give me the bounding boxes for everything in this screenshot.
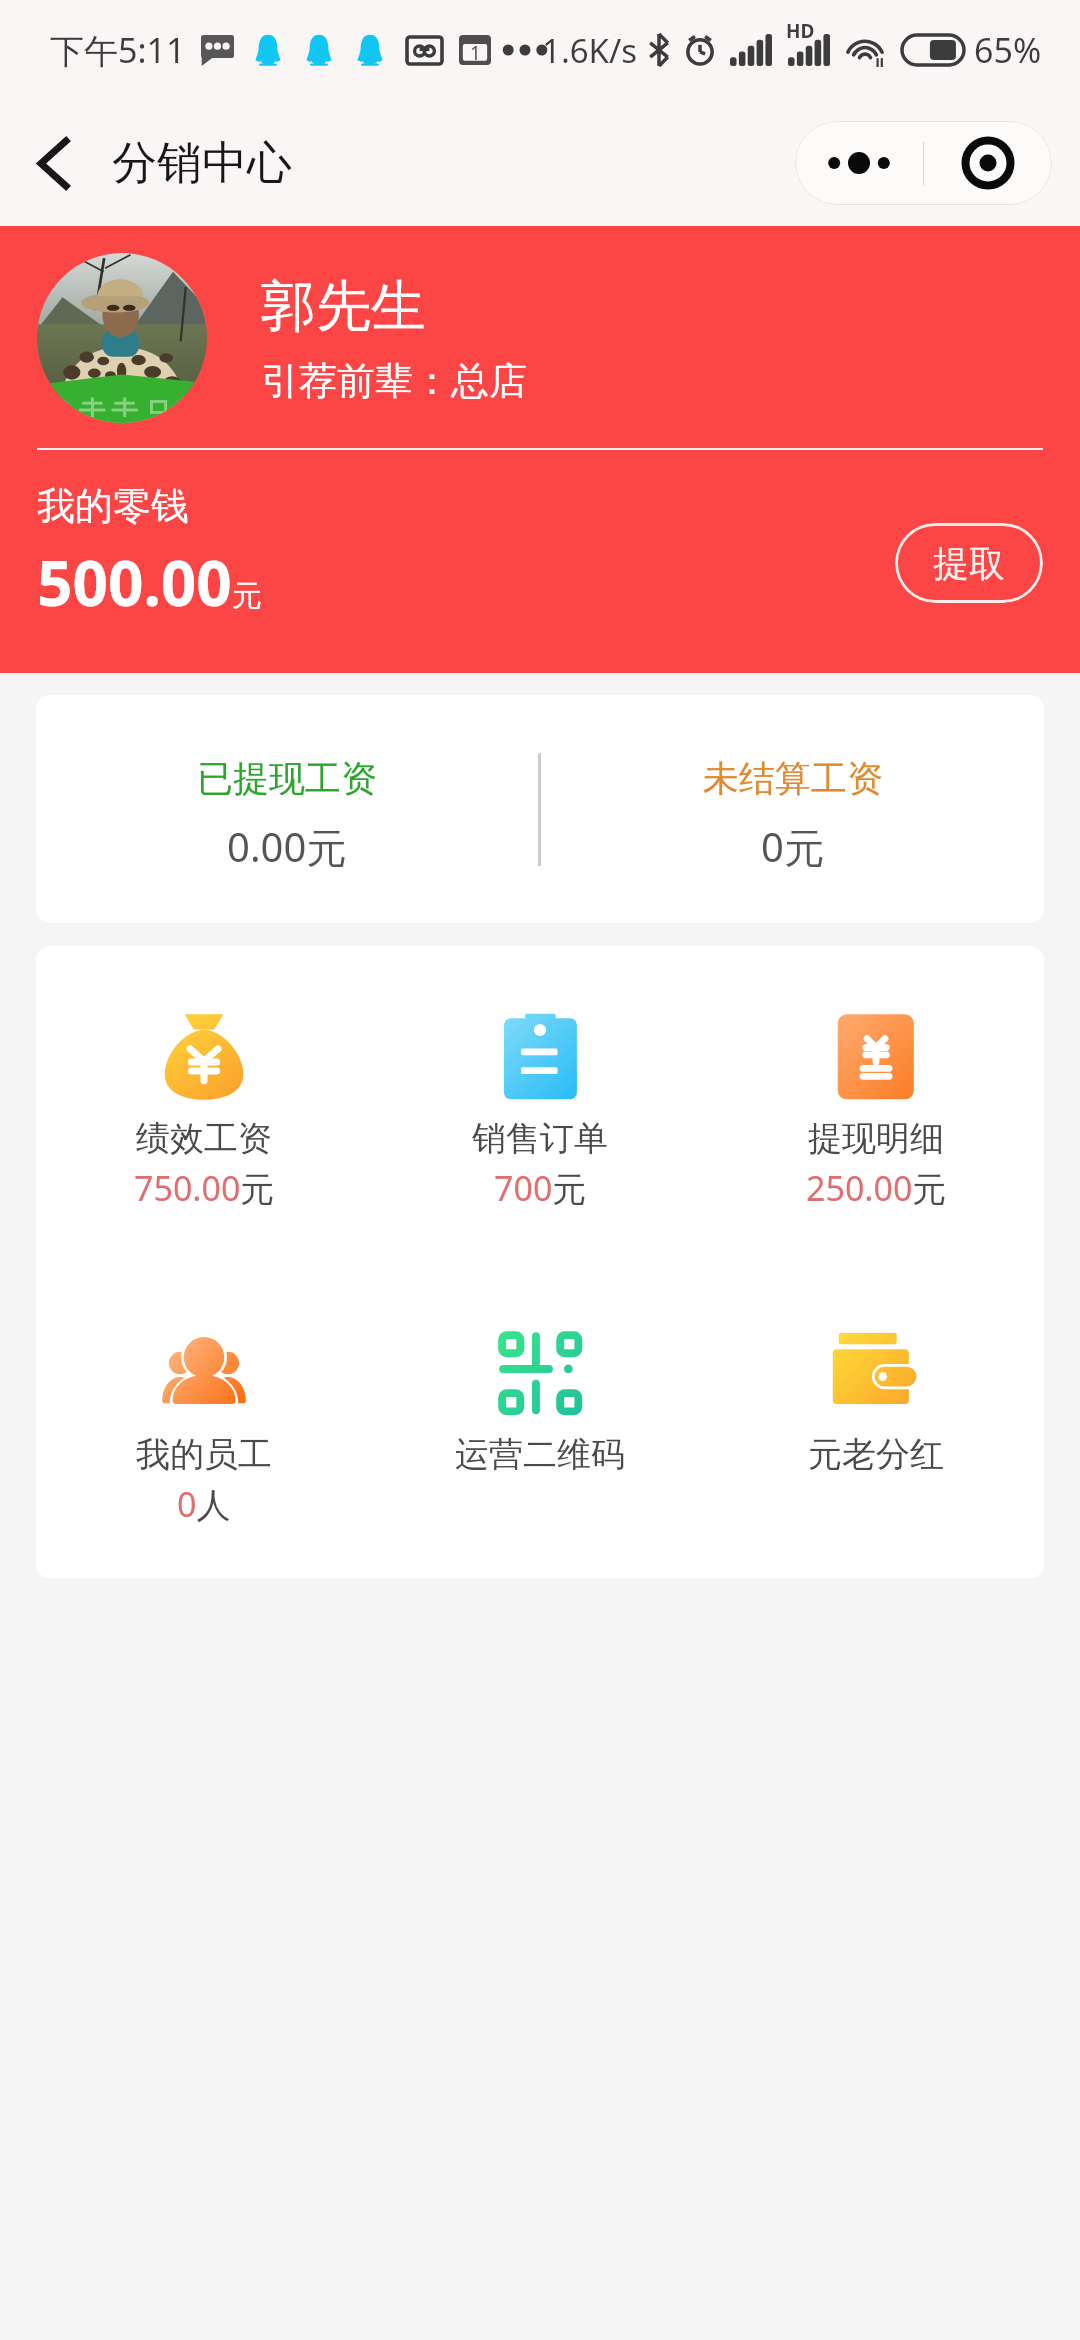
staticText: 250.00元 — [806, 1165, 947, 1211]
staticText: 引荐前辈：总店 — [261, 357, 527, 405]
staticText: 1 — [470, 40, 481, 66]
button[interactable]: 元老分红 — [708, 1328, 1044, 1476]
staticText: 未结算工资 — [703, 756, 883, 801]
staticText: 我的员工 — [136, 1433, 272, 1476]
staticText: 500.00元 — [37, 540, 262, 624]
button[interactable]: 已提现工资 — [36, 695, 538, 923]
staticText: 1.6K/s — [542, 28, 638, 73]
button[interactable]: 提取 — [895, 523, 1043, 603]
button[interactable]: Close — [924, 121, 1052, 205]
staticText: 分销中心 — [112, 135, 292, 192]
staticText: 下午5:11 — [50, 27, 186, 73]
staticText: 750.00元 — [134, 1165, 275, 1211]
staticText: 0元 — [761, 819, 824, 874]
staticText: 销售订单 — [472, 1117, 608, 1160]
button[interactable]: More — [795, 121, 923, 205]
staticText: 700元 — [494, 1165, 587, 1211]
button[interactable]: 销售订单 — [372, 1012, 708, 1211]
button[interactable]: 运营二维码 — [372, 1328, 708, 1476]
staticText: 我的零钱 — [37, 482, 189, 530]
staticText: 运营二维码 — [455, 1433, 625, 1476]
staticText: 绩效工资 — [136, 1117, 272, 1160]
staticText: HD — [786, 18, 815, 44]
staticText: 郭先生 — [261, 272, 426, 341]
button[interactable]: Back — [12, 122, 94, 204]
staticText: 提现明细 — [808, 1117, 944, 1160]
staticText: 0人 — [177, 1481, 231, 1527]
staticText: 65% — [974, 27, 1042, 73]
staticText: 0.00元 — [227, 819, 347, 874]
button[interactable]: 未结算工资 — [541, 695, 1044, 923]
staticText: 已提现工资 — [197, 756, 377, 801]
button[interactable]: 我的员工 — [36, 1328, 372, 1527]
button[interactable]: 绩效工资 — [36, 1012, 372, 1211]
button[interactable]: 提现明细 — [708, 1012, 1044, 1211]
staticText: 元老分红 — [808, 1433, 944, 1476]
staticText: 提取 — [933, 541, 1005, 586]
